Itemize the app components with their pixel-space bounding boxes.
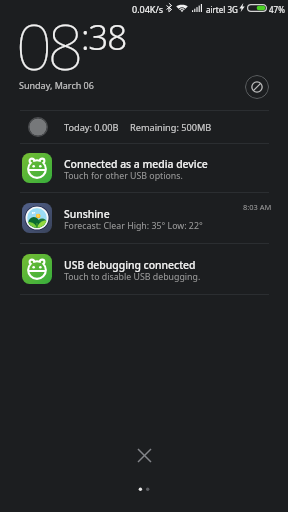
staticText: Forecast: Clear High: 35° Low: 22° — [64, 220, 203, 232]
staticText: 47% — [269, 4, 285, 15]
staticText: Touch for other USB options. — [64, 170, 183, 182]
staticText: USB debugging connected — [64, 258, 196, 272]
staticText: :38 — [81, 13, 126, 61]
button[interactable]: Do not disturb — [245, 75, 269, 99]
button[interactable]: Today: 0.00B — [0, 111, 288, 143]
button[interactable]: USB debugging connected — [0, 244, 288, 294]
staticText: 0.04K/s — [132, 3, 164, 15]
staticText: Connected as a media device — [64, 157, 208, 171]
staticText: Sunshine — [64, 207, 110, 221]
button[interactable]: Connected as a media device — [0, 144, 288, 192]
staticText: Remaining: 500MB — [130, 121, 212, 134]
staticText: Sunday, March 06 — [19, 79, 94, 91]
staticText: Touch to disable USB debugging. — [64, 271, 201, 283]
staticText: 08 — [16, 3, 79, 89]
button[interactable]: Sunshine — [0, 193, 288, 243]
staticText: 8:03 AM — [243, 202, 272, 212]
staticText: airtel 3G — [206, 4, 238, 15]
button[interactable]: Close notification shade — [126, 437, 162, 473]
staticText: Today: 0.00B — [64, 121, 119, 134]
